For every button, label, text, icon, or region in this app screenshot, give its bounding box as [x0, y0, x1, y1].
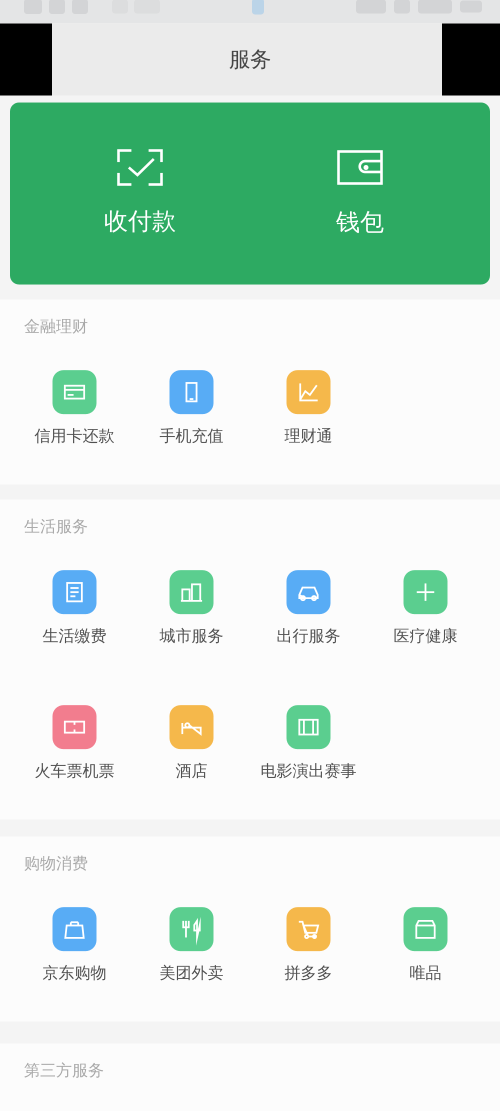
staticText: 京东购物	[42, 963, 106, 983]
staticText: 电影演出赛事	[260, 761, 356, 781]
button[interactable]: 电影演出赛事	[250, 687, 367, 822]
staticText: 出行服务	[276, 626, 340, 646]
staticText: 购物消费	[24, 853, 88, 873]
button[interactable]: 唯品	[367, 889, 484, 1024]
staticText: 拼多多	[284, 963, 332, 983]
button[interactable]: 美团外卖	[133, 889, 250, 1024]
staticText: 服务	[229, 46, 271, 73]
staticText: 手机充值	[159, 426, 223, 446]
staticText: 金融理财	[24, 316, 88, 336]
button[interactable]: 医疗健康	[367, 552, 484, 687]
button[interactable]: 拼多多	[250, 889, 367, 1024]
staticText: 第三方服务	[24, 1060, 104, 1080]
button[interactable]: 收付款	[10, 102, 270, 284]
staticText: 理财通	[284, 426, 332, 446]
button[interactable]: 生活缴费	[16, 552, 133, 687]
button[interactable]: More	[442, 23, 500, 95]
button[interactable]: 出行服务	[250, 552, 367, 687]
staticText: 生活缴费	[42, 626, 106, 646]
button[interactable]: 钱包	[270, 102, 450, 284]
staticText: 医疗健康	[393, 626, 457, 646]
button[interactable]: 理财通	[250, 352, 367, 487]
button[interactable]: 京东购物	[16, 889, 133, 1024]
button[interactable]: 手机充值	[133, 352, 250, 487]
staticText: 钱包	[336, 207, 384, 237]
button[interactable]: 信用卡还款	[16, 352, 133, 487]
staticText: 酒店	[175, 761, 207, 781]
staticText: 城市服务	[159, 626, 223, 646]
staticText: 收付款	[104, 206, 176, 236]
button[interactable]: 酒店	[133, 687, 250, 822]
staticText: 火车票机票	[34, 761, 114, 781]
button[interactable]: Back	[0, 23, 52, 95]
staticText: 生活服务	[24, 516, 88, 536]
staticText: 信用卡还款	[34, 426, 114, 446]
button[interactable]: 城市服务	[133, 552, 250, 687]
staticText: 美团外卖	[159, 963, 223, 983]
button[interactable]: 火车票机票	[16, 687, 133, 822]
staticText: 唯品	[409, 963, 441, 983]
